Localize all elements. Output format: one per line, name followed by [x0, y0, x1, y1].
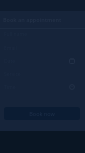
staticText: Book an appointment — [3, 16, 62, 23]
other: Pick date — [69, 58, 75, 64]
staticText: Book now — [29, 110, 55, 117]
other: Pick time — [69, 84, 75, 90]
